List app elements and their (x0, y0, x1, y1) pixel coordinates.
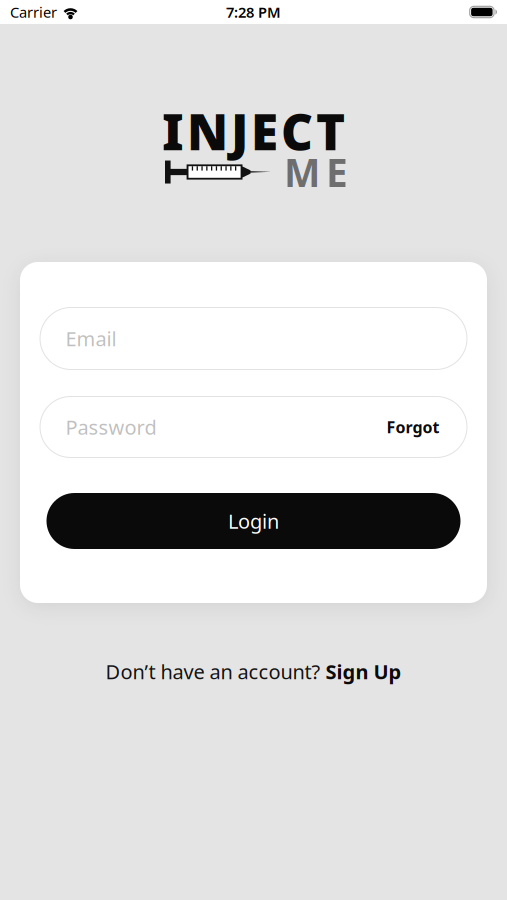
staticText: INJECT (162, 98, 345, 164)
staticText: Sign Up (325, 658, 401, 685)
button[interactable]: Login (46, 493, 460, 549)
staticText: Password (65, 414, 156, 440)
button[interactable]: Password (39, 396, 467, 458)
button[interactable]: Forgot (386, 416, 439, 438)
button[interactable]: Sign Up (325, 658, 401, 685)
staticText: 7:28 PM (226, 2, 281, 22)
button[interactable]: Email (39, 307, 467, 370)
staticText: Carrier (10, 2, 57, 22)
staticText: Email (65, 325, 116, 352)
staticText: Forgot (386, 416, 439, 438)
staticText: ME (284, 146, 348, 198)
staticText: Login (228, 508, 279, 534)
staticText: Don’t have an account? (105, 658, 325, 685)
